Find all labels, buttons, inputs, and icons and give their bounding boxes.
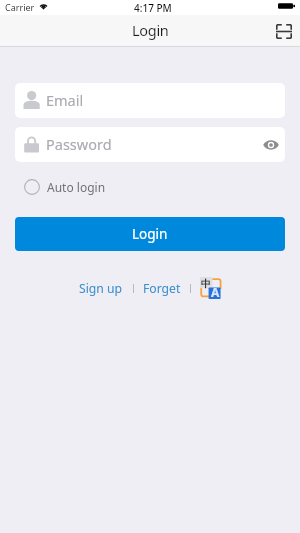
button[interactable]: Forget <box>141 277 183 299</box>
staticText: A <box>211 284 220 300</box>
staticText: Forget <box>143 280 181 296</box>
staticText: Email <box>46 90 84 110</box>
button[interactable]: Sign up <box>77 277 125 299</box>
button[interactable]: Show password <box>258 132 284 158</box>
staticText: Auto login <box>47 179 106 195</box>
staticText: Login <box>132 225 168 243</box>
staticText: Carrier <box>5 1 35 13</box>
staticText: 中 <box>201 277 211 290</box>
staticText: 4:17 PM <box>134 1 172 15</box>
staticText: Password <box>46 134 112 154</box>
staticText: Sign up <box>79 280 123 296</box>
staticText: Login <box>132 20 169 40</box>
button[interactable]: Scan QR code <box>271 18 297 44</box>
button[interactable]: Auto login <box>24 179 106 195</box>
button[interactable]: Change language <box>200 277 222 299</box>
button[interactable]: Email <box>15 83 285 118</box>
button[interactable]: Password <box>15 127 285 162</box>
button[interactable]: Login <box>15 217 285 251</box>
